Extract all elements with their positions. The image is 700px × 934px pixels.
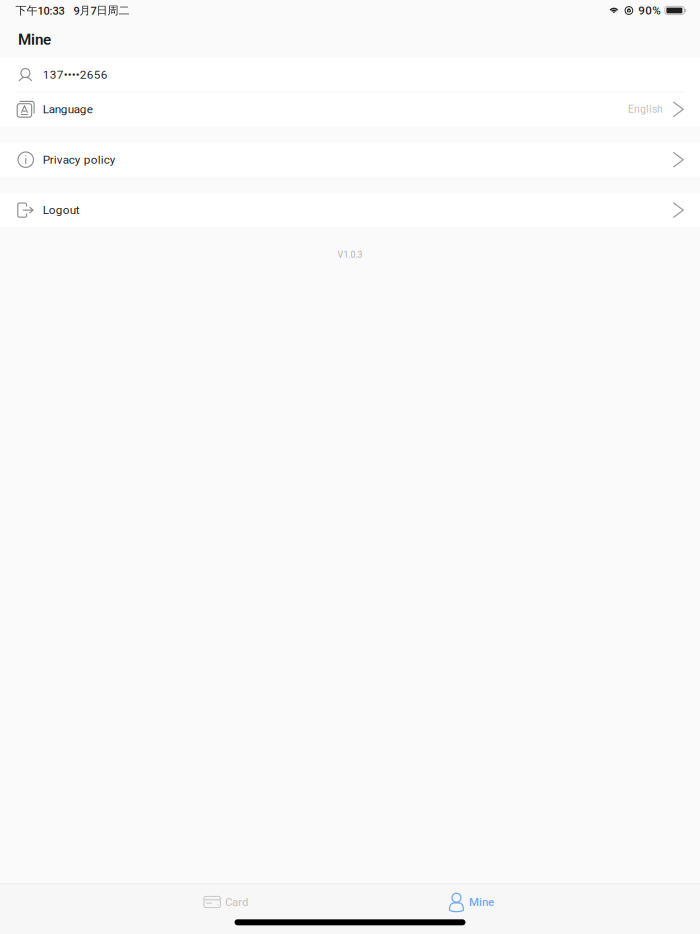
staticText: V1.0.3 xyxy=(337,250,362,260)
button[interactable]: Language xyxy=(0,92,700,126)
staticText: Card xyxy=(225,895,248,909)
button[interactable]: Privacy policy xyxy=(0,143,700,176)
button[interactable]: Card xyxy=(182,886,270,917)
staticText: 137••••2656 xyxy=(43,68,108,82)
button[interactable]: Logout xyxy=(0,193,700,227)
staticText: Logout xyxy=(43,203,80,217)
button[interactable]: 137••••2656 xyxy=(0,58,700,92)
staticText: Privacy policy xyxy=(43,153,116,167)
button[interactable]: Mine xyxy=(427,886,516,917)
staticText: Mine xyxy=(18,31,51,48)
staticText: Mine xyxy=(469,895,494,909)
staticText: Language xyxy=(43,102,93,116)
staticText: 下午10:33 9月7日周二 xyxy=(16,3,130,17)
staticText: English xyxy=(628,103,663,115)
staticText: 90% xyxy=(638,4,661,17)
